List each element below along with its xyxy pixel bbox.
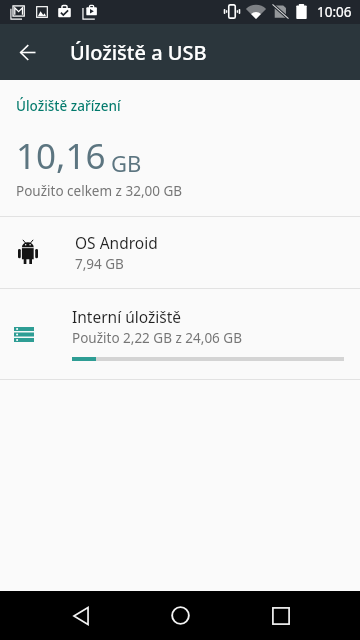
button[interactable]: Back <box>56 591 105 640</box>
button[interactable]: Recent apps <box>256 591 305 640</box>
staticText: Použito celkem z 32,00 GB <box>16 182 183 200</box>
button[interactable]: Home <box>156 591 205 640</box>
staticText: Úložiště a USB <box>70 39 207 66</box>
staticText: OS Android <box>75 232 158 253</box>
staticText: Interní úložiště <box>72 306 182 327</box>
staticText: Použito 2,22 GB z 24,06 GB <box>72 329 242 347</box>
staticText: Úložiště zařízení <box>16 97 121 115</box>
button[interactable]: Interní úložiště <box>0 289 360 379</box>
staticText: GB <box>111 148 142 178</box>
staticText: 10,16 <box>16 132 106 180</box>
staticText: 10:06 <box>317 3 352 21</box>
staticText: 7,94 GB <box>75 255 124 273</box>
button[interactable]: OS Android <box>0 217 360 288</box>
button[interactable]: Back <box>4 24 52 80</box>
